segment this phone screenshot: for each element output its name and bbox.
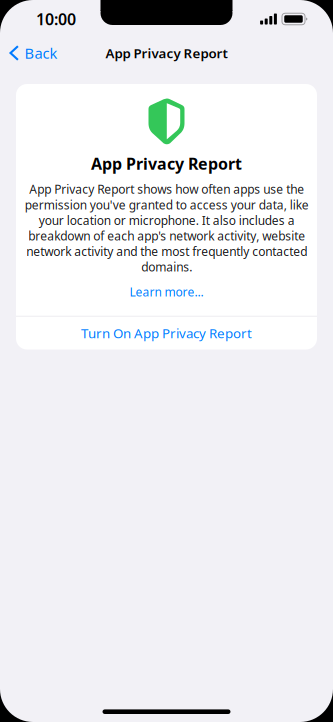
staticText: App Privacy Report shows how often apps … <box>24 181 308 275</box>
button[interactable]: Turn On App Privacy Report <box>16 316 317 349</box>
staticText: App Privacy Report <box>105 44 227 62</box>
staticText: App Privacy Report <box>91 153 242 174</box>
button[interactable]: Learn more... <box>121 279 211 305</box>
staticText: Turn On App Privacy Report <box>81 324 252 342</box>
staticText: 10:00 <box>36 8 76 30</box>
staticText: Back <box>24 43 57 63</box>
staticText: Learn more... <box>129 284 203 300</box>
button[interactable]: Back <box>1 36 65 70</box>
